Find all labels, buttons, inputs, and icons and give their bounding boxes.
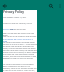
button[interactable]: Search	[46, 1, 55, 10]
staticText: you use all of the products and services…	[3, 35, 37, 37]
staticText: We collect information to provide better…	[3, 41, 37, 59]
staticText: Last modified: August 15, 2024	[3, 16, 27, 18]
staticText: When you use our services, you're	[3, 22, 32, 24]
staticText: apply to the data we collect from you wh…	[3, 32, 37, 36]
staticText: Privacy Policy	[3, 10, 25, 14]
button[interactable]: Navigate up	[0, 1, 9, 10]
staticText: We collect information in the following …	[3, 63, 37, 72]
staticText: Information we collect and how it is use…	[3, 38, 37, 42]
staticText: Privacy Policy	[3, 28, 15, 30]
staticText: and the terms that	[10, 28, 26, 30]
button[interactable]: More options	[55, 1, 64, 10]
